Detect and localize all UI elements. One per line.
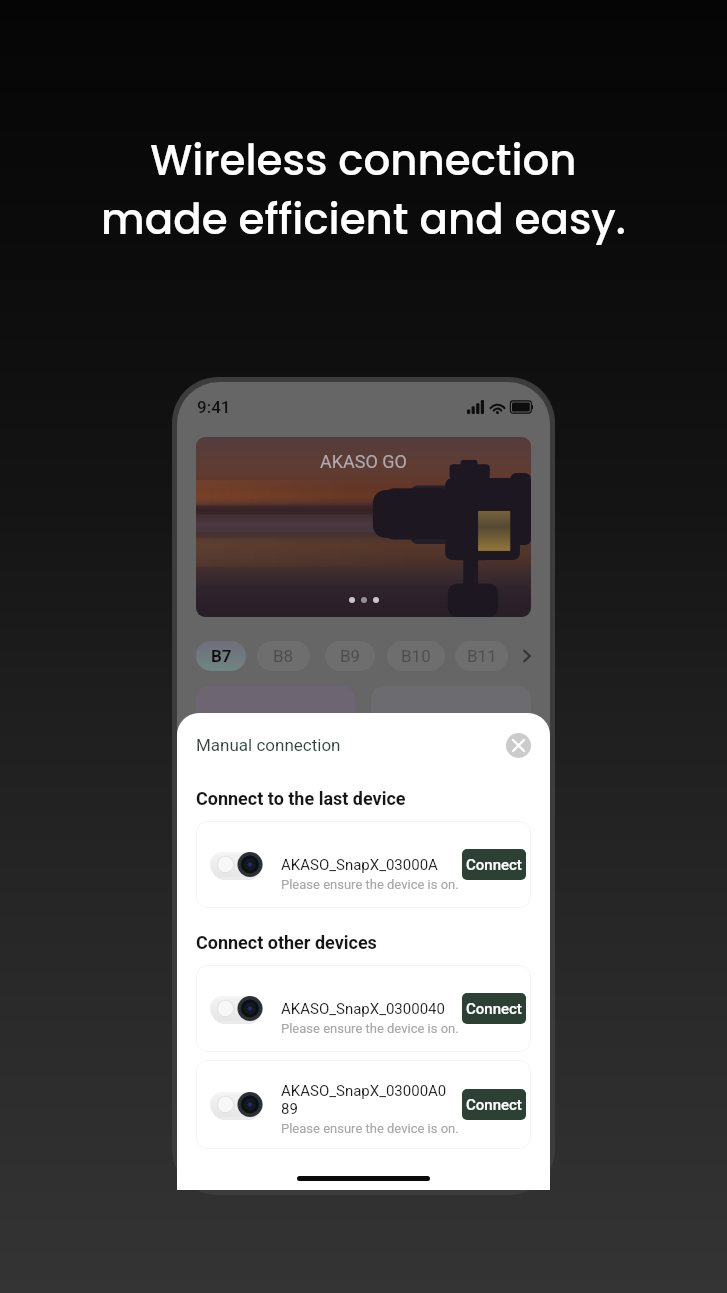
button[interactable]: Close	[506, 733, 531, 758]
staticText: Please ensure the device is on.	[281, 1021, 459, 1036]
button[interactable]: B9	[325, 641, 375, 671]
button[interactable]: AKASO_SnapX_03000A	[196, 821, 531, 908]
staticText: AKASO_SnapX_0300040	[281, 1000, 445, 1018]
button[interactable]: More modes	[518, 647, 536, 665]
staticText: AKASO GO	[320, 451, 407, 472]
button[interactable]: B8	[257, 641, 310, 671]
staticText: 9:41	[197, 397, 231, 417]
button[interactable]: AKASO_SnapX_0300040	[196, 965, 531, 1052]
staticText: Please ensure the device is on.	[281, 1121, 459, 1136]
staticText: AKASO_SnapX_03000A0	[281, 1082, 447, 1100]
staticText: made efficient and easy.	[101, 190, 626, 249]
staticText: B7	[211, 646, 232, 666]
button[interactable]: AKASO_SnapX_03000A0	[196, 1060, 531, 1149]
button[interactable]: B7	[196, 641, 246, 671]
button[interactable]: B11	[455, 641, 508, 671]
staticText: 89	[281, 1100, 298, 1118]
staticText: Wireless connection	[150, 131, 577, 190]
staticText: Connect to the last device	[196, 788, 406, 809]
staticText: Please ensure the device is on.	[281, 877, 459, 892]
staticText: B9	[340, 646, 361, 666]
button[interactable]: Connect	[462, 1089, 526, 1120]
staticText: AKASO_SnapX_03000A	[281, 856, 438, 874]
staticText: B8	[273, 646, 294, 666]
button[interactable]: Connect	[462, 993, 526, 1024]
staticText: Connect other devices	[196, 932, 377, 953]
button[interactable]: Connect	[462, 849, 526, 880]
staticText: Connect	[466, 856, 522, 874]
staticText: Connect	[466, 1000, 522, 1018]
button[interactable]: B10	[387, 641, 445, 671]
staticText: Connect	[466, 1096, 522, 1114]
button[interactable]	[371, 686, 531, 752]
staticText: B11	[467, 646, 497, 666]
button[interactable]	[196, 686, 355, 752]
staticText: Manual connection	[196, 735, 341, 755]
staticText: B10	[401, 646, 431, 666]
